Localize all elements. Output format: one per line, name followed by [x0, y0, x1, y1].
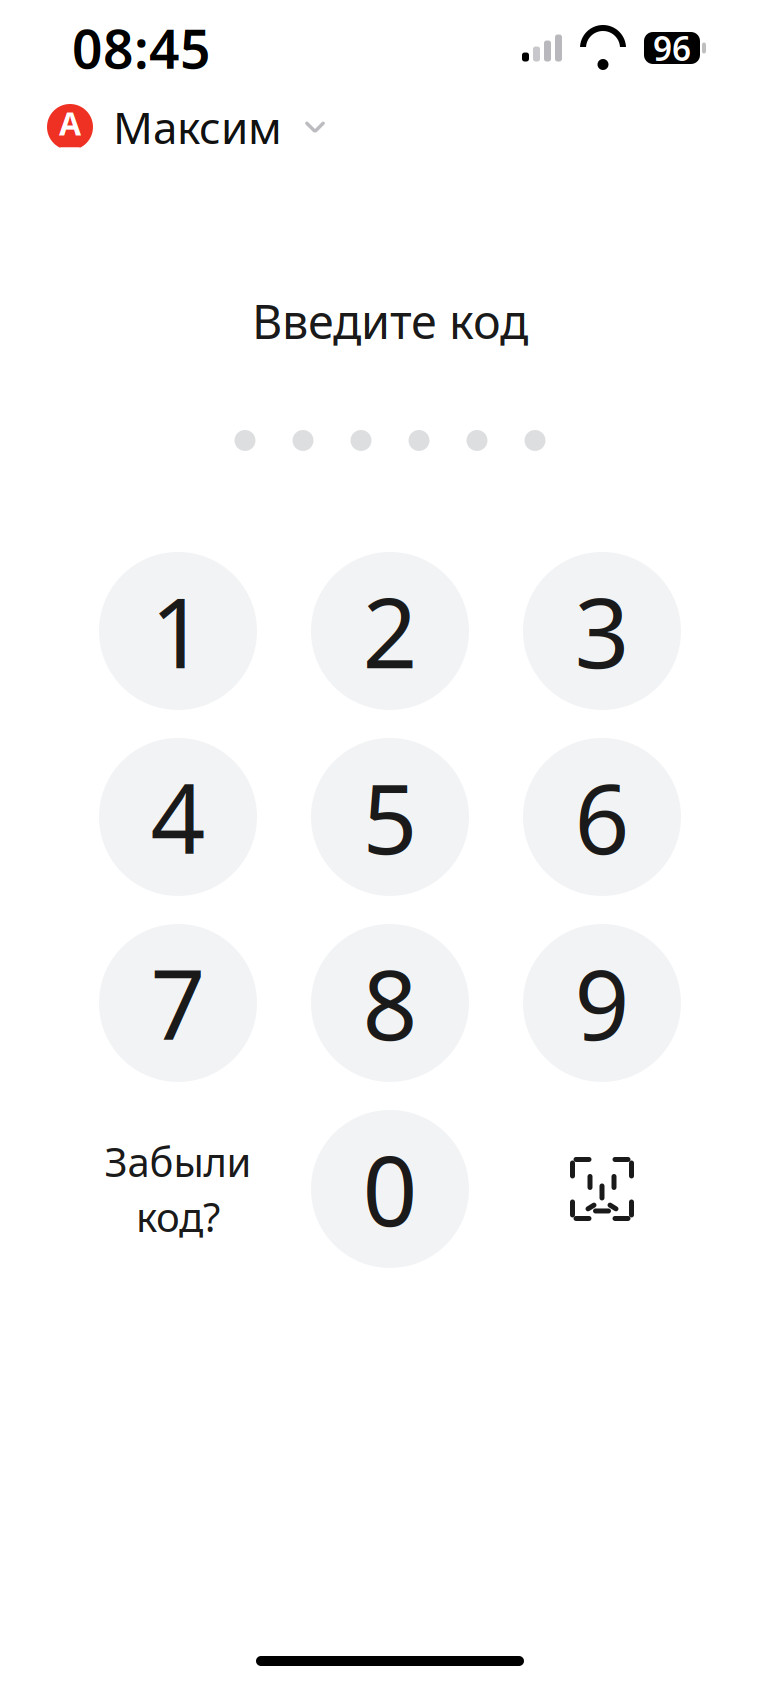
button[interactable]: 4	[99, 738, 257, 896]
staticText: 9	[574, 939, 629, 1067]
staticText: 96	[653, 26, 691, 70]
staticText: A	[59, 102, 81, 144]
button[interactable]: 3	[523, 552, 681, 710]
button[interactable]: 5	[311, 738, 469, 896]
staticText: 8	[362, 939, 417, 1067]
button[interactable]: A	[47, 92, 328, 162]
staticText: 7	[150, 939, 205, 1067]
staticText: 5	[362, 753, 417, 881]
button[interactable]: 7	[99, 924, 257, 1082]
button[interactable]: 1	[99, 552, 257, 710]
staticText: 2	[362, 567, 417, 695]
staticText: Введите код	[252, 290, 528, 352]
staticText: 08:45	[72, 13, 211, 83]
staticText: код?	[136, 1190, 220, 1243]
staticText: 0	[362, 1125, 417, 1253]
staticText: 6	[574, 753, 629, 881]
staticText: Максим	[113, 98, 282, 156]
button[interactable]: 8	[311, 924, 469, 1082]
button[interactable]: Забыли	[99, 1110, 257, 1268]
button[interactable]: Войти по Face ID	[523, 1110, 681, 1268]
button[interactable]: 0	[311, 1110, 469, 1268]
button[interactable]: 2	[311, 552, 469, 710]
staticText: 4	[150, 753, 205, 881]
staticText: 3	[574, 567, 629, 695]
button[interactable]: 6	[523, 738, 681, 896]
staticText: 1	[150, 567, 205, 695]
staticText: Забыли	[104, 1135, 251, 1188]
button[interactable]: 9	[523, 924, 681, 1082]
